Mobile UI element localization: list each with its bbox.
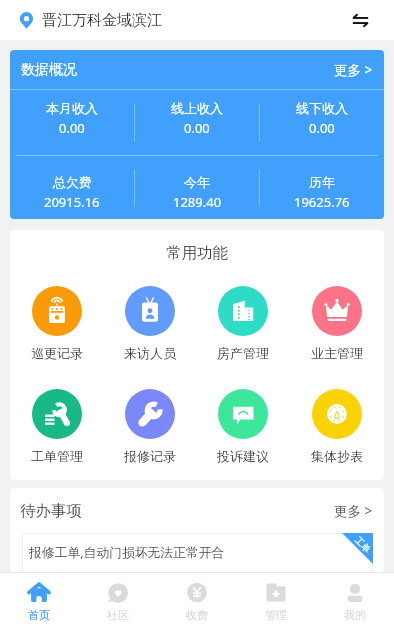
button[interactable]: 数据概况: [10, 50, 384, 89]
staticText: 管理: [265, 608, 287, 622]
button[interactable]: 待办事项: [10, 488, 384, 533]
staticText: 我的: [344, 608, 366, 622]
staticText: 首页: [28, 608, 50, 622]
button[interactable]: 巡更记录: [10, 286, 103, 361]
staticText: 集体抄表: [311, 448, 363, 464]
button[interactable]: 今年: [135, 156, 259, 219]
button[interactable]: Switch project: [347, 7, 373, 33]
staticText: 线上收入: [171, 100, 223, 116]
button[interactable]: 总欠费: [10, 156, 134, 219]
staticText: 常用功能: [166, 243, 228, 263]
staticText: 报修工单,自动门损坏无法正常开合: [29, 543, 225, 560]
staticText: 待办事项: [20, 501, 82, 521]
button[interactable]: 本月收入: [10, 90, 134, 155]
staticText: 历年: [309, 174, 335, 190]
staticText: 数据概况: [21, 61, 77, 79]
staticText: 0.00: [309, 119, 335, 137]
button[interactable]: 工单管理: [10, 389, 103, 464]
button[interactable]: 历年: [260, 156, 384, 219]
staticText: 线下收入: [296, 100, 348, 116]
staticText: 今年: [184, 174, 210, 190]
staticText: 19625.76: [294, 193, 350, 211]
button[interactable]: 集体抄表: [290, 389, 384, 464]
button[interactable]: 社区: [78, 581, 157, 622]
button[interactable]: 业主管理: [290, 286, 384, 361]
staticText: 0.00: [184, 119, 210, 137]
button[interactable]: 投诉建议: [196, 389, 290, 464]
staticText: 20915.16: [44, 193, 100, 211]
staticText: 晋江万科金域滨江: [42, 11, 162, 30]
staticText: 房产管理: [217, 345, 269, 361]
button[interactable]: 房产管理: [196, 286, 290, 361]
staticText: 工单管理: [31, 448, 83, 464]
button[interactable]: 线上收入: [135, 90, 259, 155]
button[interactable]: 报修工单,自动门损坏无法正常开合: [22, 533, 373, 572]
staticText: 收费: [186, 608, 208, 622]
button[interactable]: 线下收入: [260, 90, 384, 155]
button[interactable]: 我的: [315, 581, 394, 622]
staticText: 1289.40: [173, 193, 222, 211]
staticText: 巡更记录: [31, 345, 83, 361]
staticText: 业主管理: [311, 345, 363, 361]
staticText: 投诉建议: [217, 448, 269, 464]
staticText: 0.00: [59, 119, 85, 137]
button[interactable]: 来访人员: [103, 286, 196, 361]
staticText: 报修记录: [124, 448, 176, 464]
staticText: 更多 >: [334, 61, 373, 79]
button[interactable]: 管理: [236, 581, 315, 622]
staticText: 工单: [353, 534, 373, 555]
staticText: 社区: [107, 608, 129, 622]
staticText: 总欠费: [53, 174, 92, 190]
button[interactable]: 报修记录: [103, 389, 196, 464]
staticText: 来访人员: [124, 345, 176, 361]
staticText: 本月收入: [46, 100, 98, 116]
button[interactable]: 首页: [0, 581, 78, 622]
staticText: 更多 >: [334, 502, 373, 520]
button[interactable]: 收费: [157, 581, 236, 622]
